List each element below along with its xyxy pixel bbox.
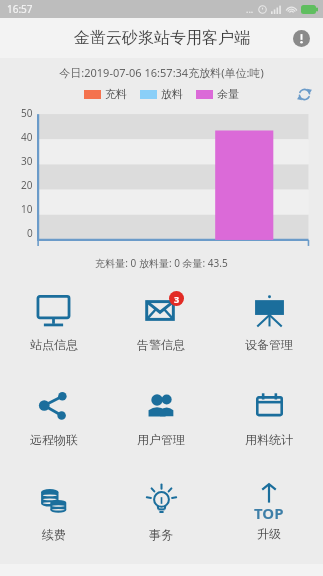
- staticText: 40: [21, 130, 33, 144]
- staticText: 设备管理: [245, 337, 293, 352]
- staticText: 充料: [105, 87, 127, 101]
- button[interactable]: 用户管理: [107, 369, 215, 464]
- button[interactable]: 设备管理: [215, 274, 323, 369]
- staticText: 金凿云砂浆站专用客户端: [74, 28, 250, 48]
- staticText: 事务: [149, 527, 173, 542]
- staticText: 升级: [257, 526, 281, 541]
- button[interactable]: 续费: [0, 464, 107, 559]
- staticText: ...: [246, 3, 254, 15]
- staticText: 今日:2019-07-06 16:57:34充放料(单位:吨): [0, 65, 323, 80]
- staticText: 10: [21, 202, 33, 216]
- button[interactable]: 3: [107, 274, 215, 369]
- staticText: 3: [174, 293, 180, 305]
- staticText: 站点信息: [30, 337, 78, 352]
- button[interactable]: Refresh: [293, 85, 315, 103]
- staticText: 远程物联: [30, 432, 78, 447]
- staticText: 放料: [161, 87, 183, 101]
- staticText: 16:57: [7, 2, 33, 16]
- staticText: 余量: [217, 87, 239, 101]
- staticText: 0: [27, 226, 33, 240]
- button[interactable]: 用料统计: [215, 369, 323, 464]
- staticText: TOP: [254, 503, 284, 523]
- button[interactable]: 事务: [107, 464, 215, 559]
- staticText: 充料量: 0 放料量: 0 余量: 43.5: [0, 256, 323, 270]
- button[interactable]: 远程物联: [0, 369, 107, 464]
- button[interactable]: 站点信息: [0, 274, 107, 369]
- staticText: 用料统计: [245, 432, 293, 447]
- button[interactable]: TOP: [215, 464, 323, 559]
- staticText: 用户管理: [137, 432, 185, 447]
- staticText: 50: [21, 106, 33, 120]
- staticText: 告警信息: [137, 337, 185, 352]
- staticText: 续费: [42, 527, 66, 542]
- staticText: 30: [21, 154, 33, 168]
- button[interactable]: About: [288, 25, 314, 51]
- staticText: 20: [21, 178, 33, 192]
